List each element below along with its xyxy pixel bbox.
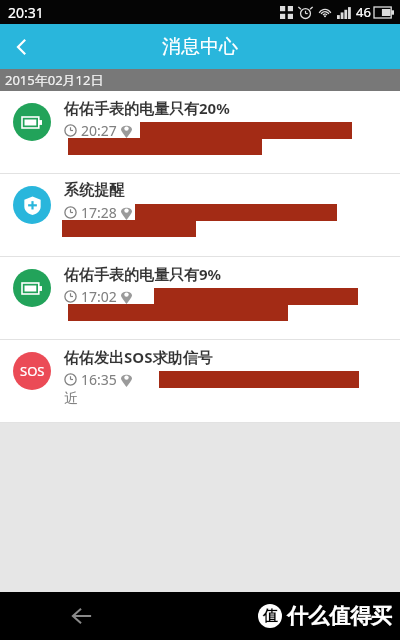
staticText: 17:28 <box>81 203 117 222</box>
staticText: 近 <box>64 390 78 408</box>
staticText: 20:31 <box>8 3 44 22</box>
button[interactable]: Back <box>60 594 104 638</box>
staticText: 2015年02月12日 <box>5 71 104 89</box>
staticText: 17:02 <box>81 287 117 306</box>
button[interactable]: 佑佑手表的电量只有20% <box>0 91 400 173</box>
staticText: 佑佑发出SOS求助信号 <box>64 347 213 367</box>
staticText: SOS <box>20 362 45 380</box>
button[interactable]: 佑佑手表的电量只有9% <box>0 257 400 339</box>
button[interactable]: SOS <box>0 340 400 422</box>
staticText: 什么值得买 <box>287 603 392 629</box>
staticText: 消息中心 <box>162 35 238 59</box>
staticText: 系统提醒 <box>64 181 124 200</box>
button[interactable]: 系统提醒 <box>0 174 400 256</box>
staticText: 20:27 <box>81 121 117 140</box>
staticText: 46 <box>356 3 371 21</box>
button[interactable]: Back <box>0 25 44 69</box>
staticText: 佑佑手表的电量只有9% <box>64 264 222 284</box>
staticText: 16:35 <box>81 370 117 389</box>
staticText: 佑佑手表的电量只有20% <box>64 98 230 118</box>
staticText: 值 <box>263 607 278 626</box>
